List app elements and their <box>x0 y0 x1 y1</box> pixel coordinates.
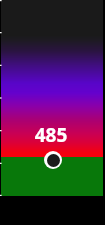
staticText: 485 <box>0 122 102 148</box>
button[interactable]: Level slider <box>1 0 103 196</box>
button[interactable]: Drag handle <box>44 151 62 169</box>
